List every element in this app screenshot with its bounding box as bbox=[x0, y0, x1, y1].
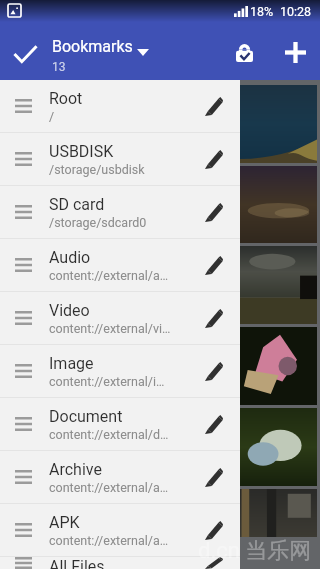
button[interactable]: Bookmarks bbox=[49, 22, 230, 80]
button[interactable]: Edit bbox=[188, 345, 240, 397]
staticText: content://external/vi… bbox=[49, 321, 171, 336]
staticText: Bookmarks bbox=[52, 37, 133, 56]
staticText: Root bbox=[49, 89, 83, 108]
staticText: All Files bbox=[49, 557, 105, 569]
staticText: content://external/a… bbox=[49, 480, 169, 495]
staticText: content://external/i… bbox=[49, 374, 165, 389]
button[interactable]: Document bbox=[0, 398, 240, 450]
button[interactable]: Edit bbox=[188, 186, 240, 238]
button[interactable]: USBDISK bbox=[0, 133, 240, 185]
staticText: 18% bbox=[250, 4, 274, 19]
staticText: Archive bbox=[49, 460, 102, 479]
button[interactable]: Done bbox=[0, 22, 49, 80]
staticText: content://external/d… bbox=[49, 427, 169, 442]
button[interactable]: Archive bbox=[0, 451, 240, 503]
button[interactable]: All Files bbox=[0, 557, 240, 569]
staticText: Video bbox=[49, 301, 90, 320]
staticText: /storage/sdcard0 bbox=[49, 215, 147, 230]
button[interactable]: Video bbox=[0, 292, 240, 344]
staticText: 10:28 bbox=[280, 4, 312, 19]
staticText: /storage/usbdisk bbox=[49, 162, 145, 177]
staticText: Image bbox=[49, 354, 94, 373]
staticText: 13 bbox=[52, 60, 66, 74]
button[interactable]: Edit bbox=[188, 451, 240, 503]
button[interactable]: Edit bbox=[188, 239, 240, 291]
staticText: Document bbox=[49, 407, 123, 426]
button[interactable]: Edit bbox=[188, 292, 240, 344]
button[interactable]: APK bbox=[0, 504, 240, 556]
staticText: USBDISK bbox=[49, 142, 114, 161]
button[interactable]: Edit bbox=[188, 133, 240, 185]
button[interactable]: Edit bbox=[188, 80, 240, 132]
button[interactable]: Audio bbox=[0, 239, 240, 291]
button[interactable]: Image bbox=[0, 345, 240, 397]
staticText: d.cn 当乐网 bbox=[198, 537, 312, 565]
staticText: / bbox=[49, 109, 55, 124]
staticText: content://external/a… bbox=[49, 533, 169, 548]
button[interactable]: Edit bbox=[188, 504, 240, 556]
staticText: content://external/a… bbox=[49, 268, 169, 283]
staticText: Audio bbox=[49, 248, 91, 267]
button[interactable]: Lock bbox=[230, 22, 271, 80]
button[interactable]: Edit bbox=[188, 557, 240, 569]
button[interactable]: SD card bbox=[0, 186, 240, 238]
staticText: SD card bbox=[49, 195, 105, 214]
button[interactable]: Root bbox=[0, 80, 240, 132]
button[interactable]: Edit bbox=[188, 398, 240, 450]
staticText: APK bbox=[49, 513, 80, 532]
button[interactable]: Add bookmark bbox=[271, 22, 320, 80]
